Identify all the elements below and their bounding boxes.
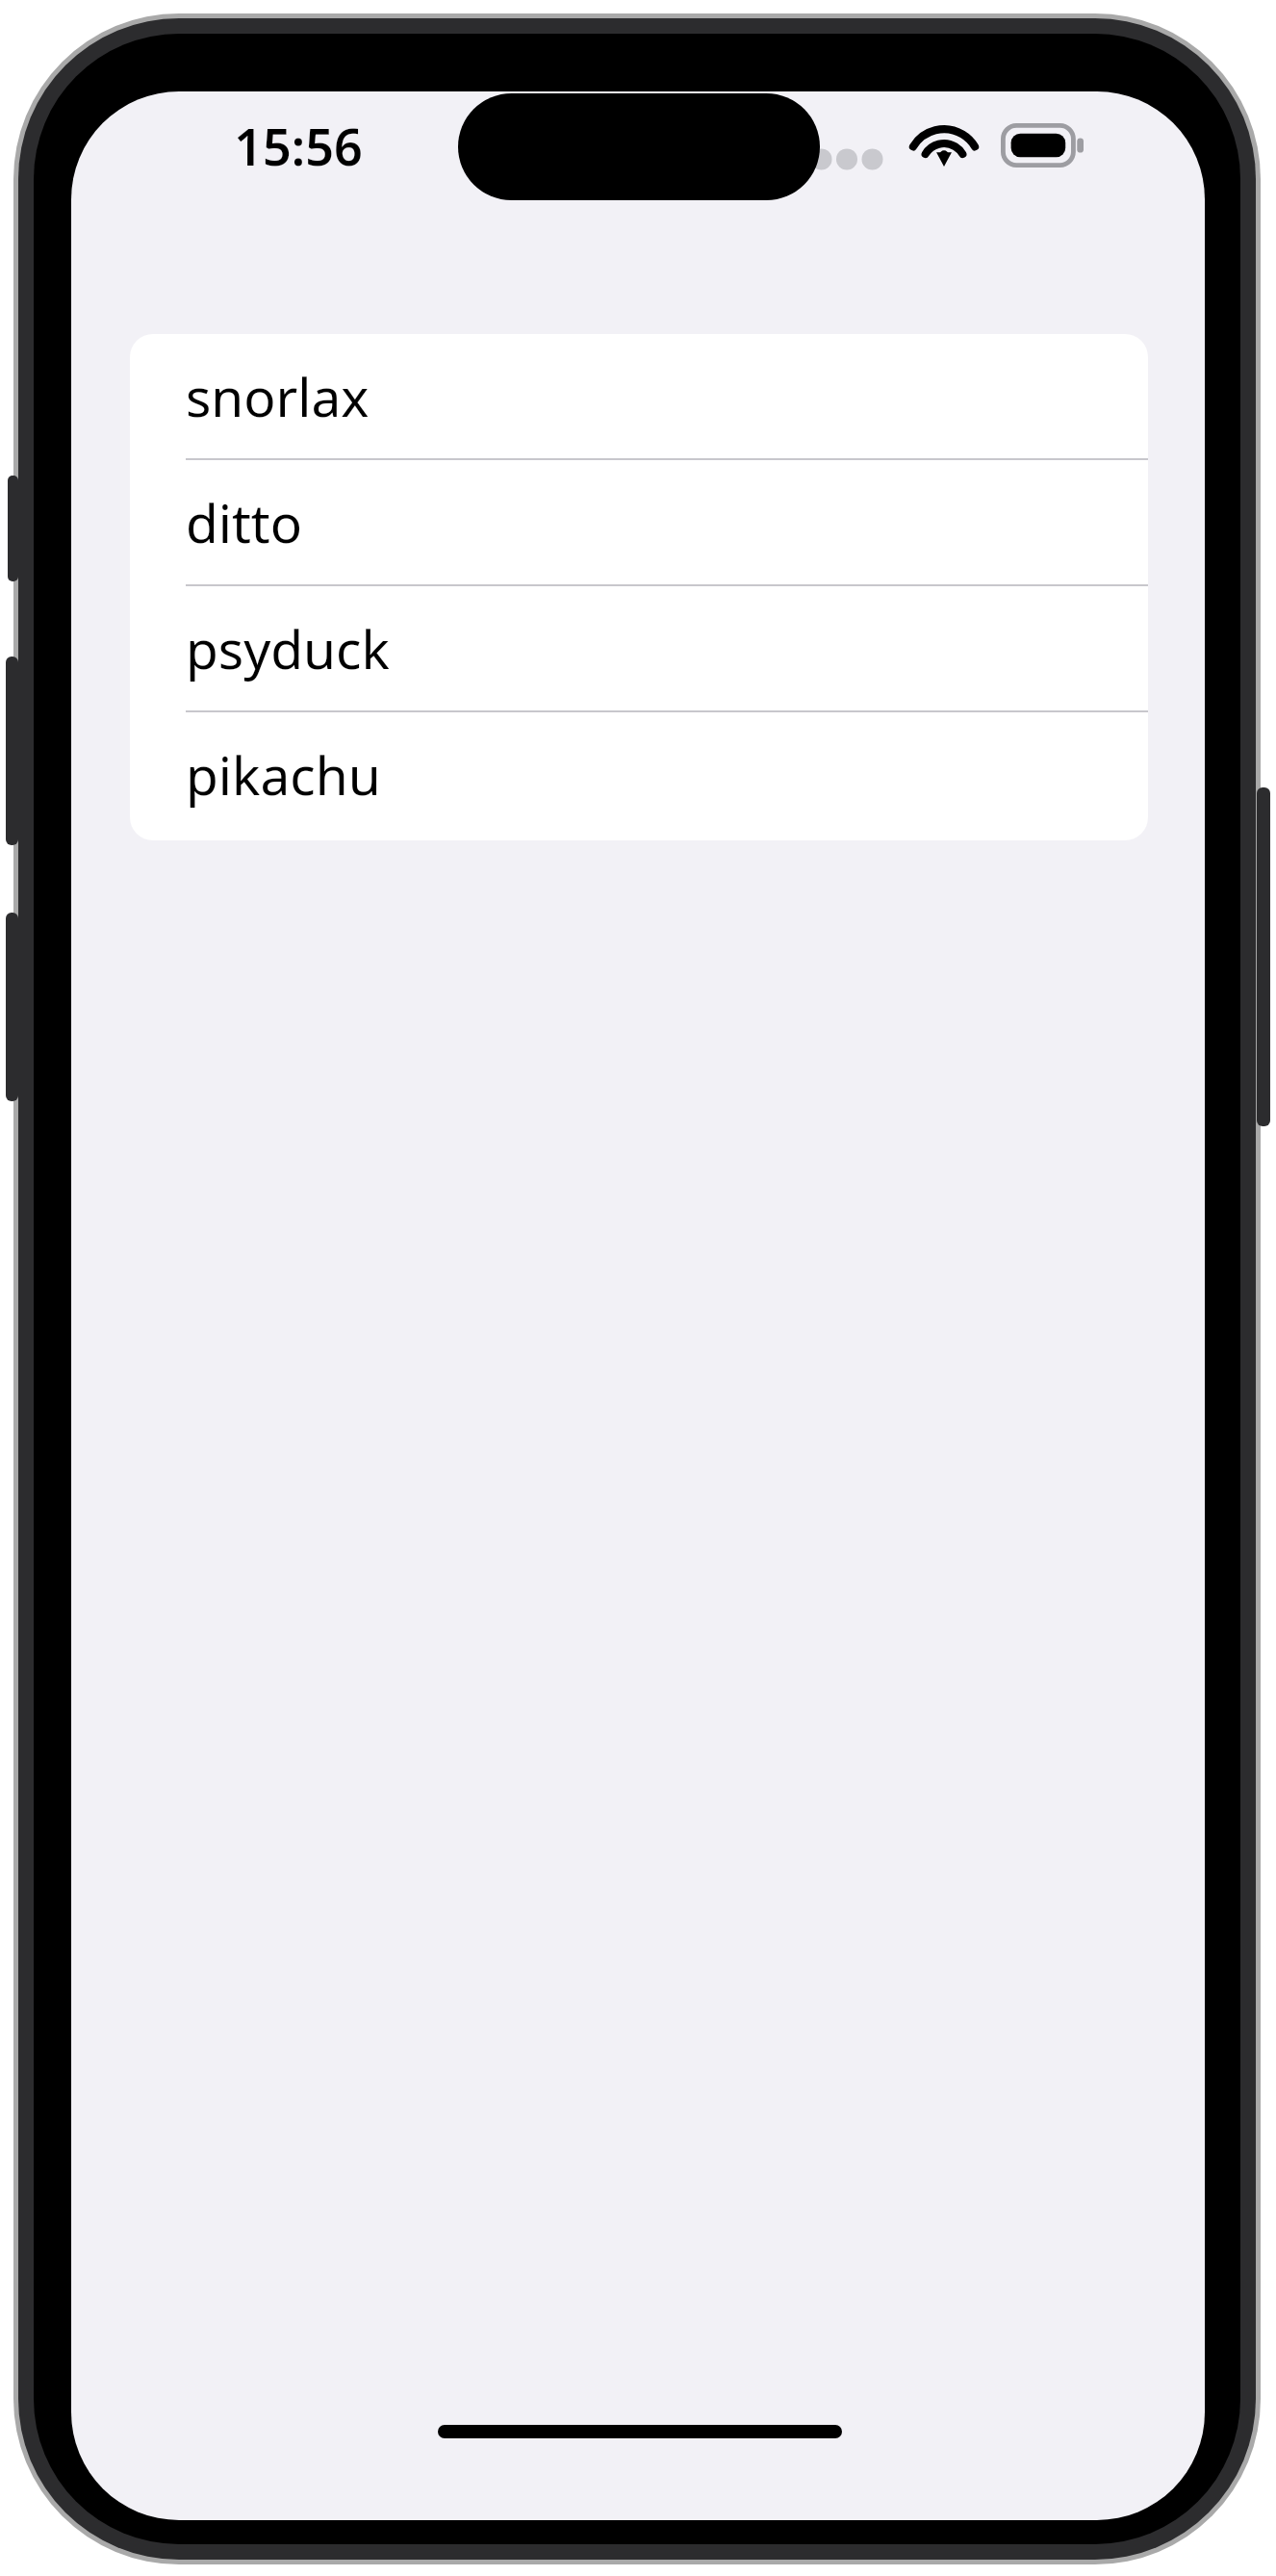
button[interactable]: psyduck xyxy=(130,586,1148,712)
staticText: pikachu xyxy=(186,738,381,811)
staticText: 15:56 xyxy=(234,112,363,180)
button[interactable]: pikachu xyxy=(130,712,1148,838)
button[interactable]: snorlax xyxy=(130,334,1148,460)
staticText: snorlax xyxy=(186,360,370,432)
staticText: psyduck xyxy=(186,612,390,684)
button[interactable]: ditto xyxy=(130,460,1148,586)
staticText: ditto xyxy=(186,486,303,558)
